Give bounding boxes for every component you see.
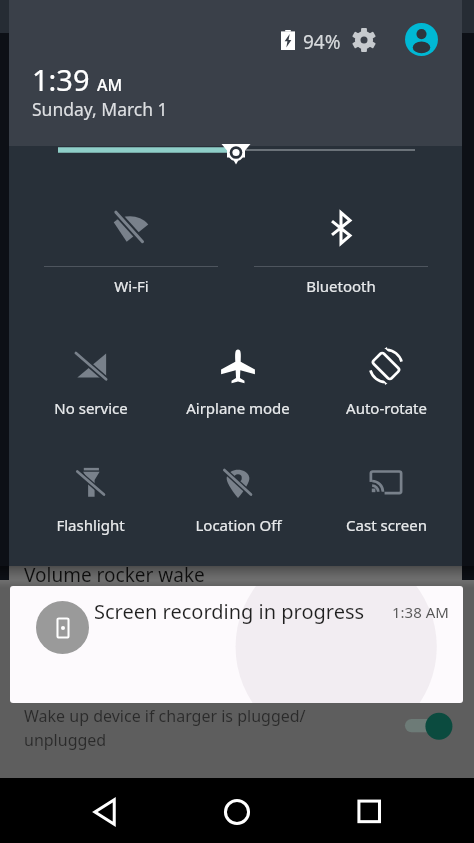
- button[interactable]: Airplane mode: [164, 348, 312, 448]
- button[interactable]: Bluetooth: [236, 210, 446, 310]
- staticText: Flashlight: [56, 515, 125, 535]
- button[interactable]: Screen recording in progress: [10, 586, 463, 703]
- staticText: Auto-rotate: [346, 398, 427, 418]
- button[interactable]: Flashlight: [17, 465, 164, 565]
- staticText: 94%: [303, 29, 341, 55]
- staticText: Bluetooth: [306, 276, 376, 296]
- button[interactable]: Home: [216, 791, 258, 833]
- staticText: Wake up device if charger is plugged/ un…: [24, 705, 306, 751]
- staticText: Airplane mode: [186, 398, 290, 418]
- button[interactable]: No service: [17, 348, 164, 448]
- button[interactable]: Back: [84, 791, 126, 833]
- staticText: Screen recording in progress: [94, 598, 365, 625]
- staticText: AM: [97, 74, 123, 96]
- button[interactable]: Recent apps: [348, 791, 390, 833]
- staticText: Wi-Fi: [114, 276, 149, 296]
- staticText: 1:39: [32, 60, 90, 99]
- staticText: Cast screen: [346, 515, 427, 535]
- button[interactable]: Cast screen: [312, 465, 460, 565]
- button[interactable]: Wi-Fi: [26, 210, 236, 310]
- staticText: 1:38 AM: [392, 602, 449, 622]
- staticText: Volume rocker wake: [24, 562, 205, 588]
- button[interactable]: User profile: [404, 22, 439, 57]
- button[interactable]: Toggle wake on charge: [398, 710, 460, 740]
- staticText: Location Off: [195, 515, 282, 535]
- button[interactable]: Location Off: [164, 465, 312, 565]
- staticText: Sunday, March 1: [32, 97, 168, 121]
- staticText: No service: [54, 398, 128, 418]
- button[interactable]: Auto-rotate: [312, 348, 460, 448]
- button[interactable]: Settings: [350, 26, 378, 54]
